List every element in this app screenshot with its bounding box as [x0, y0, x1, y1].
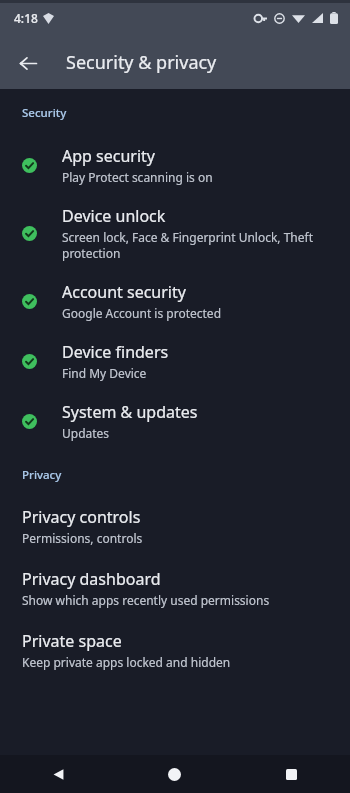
button[interactable]: Back [0, 755, 116, 793]
button[interactable]: Device finders [0, 331, 350, 391]
button[interactable]: App security [0, 135, 350, 195]
button[interactable]: Account security [0, 271, 350, 331]
staticText: Account security [62, 281, 186, 303]
staticText: Play Protect scanning is on [62, 169, 213, 185]
staticText: Device finders [62, 341, 169, 363]
button[interactable]: Private space [0, 619, 350, 681]
staticText: Google Account is protected [62, 305, 222, 321]
button[interactable]: Privacy dashboard [0, 557, 350, 619]
staticText: Private space [22, 630, 122, 652]
staticText: Device unlock [62, 205, 166, 227]
staticText: Privacy controls [22, 506, 141, 528]
button[interactable]: Recent apps [233, 755, 350, 793]
staticText: Security [22, 105, 67, 121]
button[interactable]: System & updates [0, 391, 350, 451]
button[interactable]: Back [8, 43, 48, 83]
staticText: System & updates [62, 401, 198, 423]
staticText: Keep private apps locked and hidden [22, 654, 231, 670]
staticText: Show which apps recently used permission… [22, 592, 270, 608]
staticText: Find My Device [62, 365, 147, 381]
staticText: Security & privacy [66, 50, 217, 75]
staticText: Updates [62, 425, 110, 441]
staticText: Privacy dashboard [22, 568, 161, 590]
button[interactable]: Privacy controls [0, 495, 350, 557]
staticText: Permissions, controls [22, 530, 143, 546]
staticText: App security [62, 145, 155, 167]
button[interactable]: Home [116, 755, 233, 793]
staticText: 4:18 [14, 10, 38, 26]
staticText: Privacy [22, 467, 62, 483]
button[interactable]: Device unlock [0, 195, 350, 271]
staticText: Screen lock, Face & Fingerprint Unlock, … [62, 229, 314, 261]
